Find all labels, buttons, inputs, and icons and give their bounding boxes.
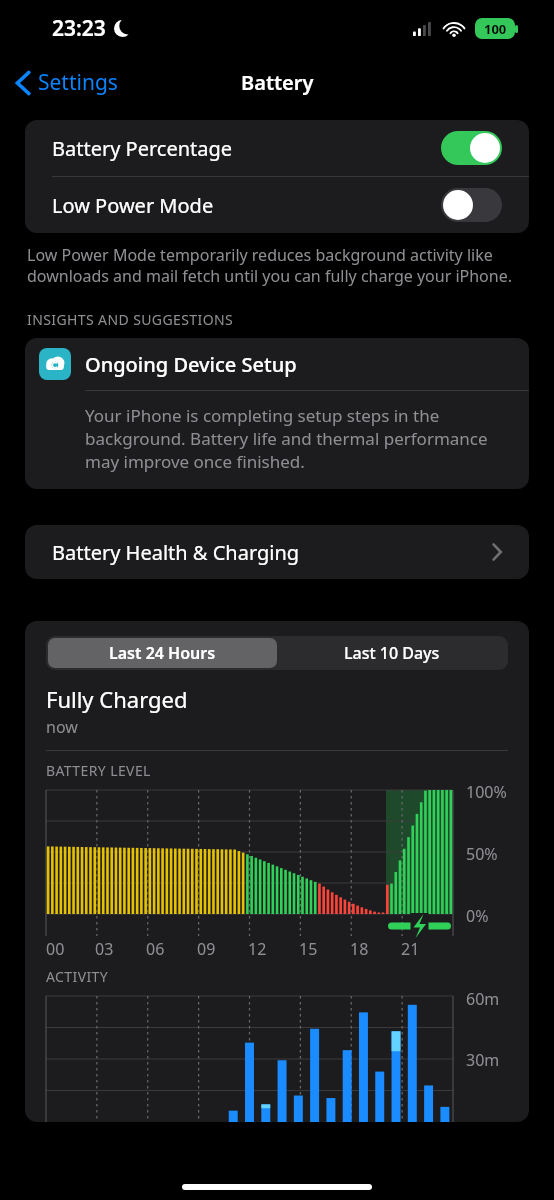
staticText: Last 24 Hours	[109, 642, 216, 664]
staticText: 00	[46, 938, 65, 960]
staticText: Low Power Mode	[52, 192, 214, 219]
staticText: 30m	[466, 1049, 500, 1071]
button[interactable]: Last 10 Days	[277, 638, 506, 668]
staticText: Battery	[241, 69, 314, 96]
staticText: 50%	[466, 843, 498, 865]
staticText: now	[46, 716, 78, 738]
staticText: 15	[299, 938, 318, 960]
staticText: 21	[401, 938, 420, 960]
button[interactable]: Settings	[10, 64, 124, 101]
staticText: INSIGHTS AND SUGGESTIONS	[27, 310, 234, 329]
staticText: Settings	[38, 68, 118, 97]
staticText: Low Power Mode temporarily reduces backg…	[27, 244, 524, 287]
staticText: ACTIVITY	[46, 967, 109, 986]
staticText: Ongoing Device Setup	[85, 351, 297, 378]
staticText: 06	[146, 938, 165, 960]
staticText: 03	[95, 938, 114, 960]
staticText: 60m	[466, 988, 500, 1010]
staticText: 0%	[466, 905, 489, 927]
staticText: Your iPhone is completing setup steps in…	[85, 404, 509, 473]
staticText: Last 10 Days	[344, 642, 440, 664]
staticText: 23:23	[52, 14, 106, 43]
button[interactable]: Ongoing Device Setup	[25, 338, 529, 489]
button[interactable]: Battery Percentage	[25, 120, 529, 176]
staticText: Fully Charged	[46, 684, 188, 714]
staticText: Battery Percentage	[52, 135, 233, 162]
staticText: 09	[197, 938, 216, 960]
staticText: Battery Health & Charging	[52, 539, 300, 566]
button[interactable]: Low Power Mode	[25, 177, 529, 233]
staticText: 12	[248, 938, 267, 960]
staticText: 18	[350, 938, 369, 960]
staticText: 100%	[466, 781, 507, 803]
staticText: BATTERY LEVEL	[46, 761, 151, 780]
button[interactable]: Battery Health & Charging	[25, 525, 529, 579]
button[interactable]: Last 24 Hours	[48, 638, 277, 668]
staticText: 100	[484, 20, 507, 38]
